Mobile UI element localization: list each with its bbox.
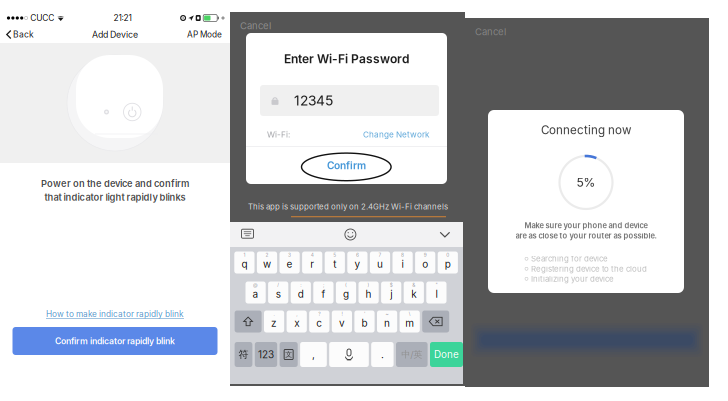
button[interactable]: Dictate — [329, 342, 369, 367]
staticText: that indicator light rapidly blinks — [44, 192, 185, 203]
staticText: a — [253, 288, 259, 300]
staticText: Confirm — [327, 159, 366, 172]
staticText: 6 — [356, 252, 359, 258]
button[interactable]: Done — [430, 342, 463, 367]
staticText: n — [384, 317, 390, 329]
staticText: q — [241, 258, 247, 270]
button[interactable]: 中/英 — [396, 342, 428, 367]
staticText: This app is supported only on 2.4GHz Wi-… — [248, 202, 448, 211]
button[interactable]: , — [287, 310, 307, 332]
staticText: 8 — [401, 252, 404, 258]
staticText: ; — [323, 282, 324, 288]
staticText: l — [435, 288, 437, 300]
button[interactable]: Cancel — [469, 23, 512, 40]
staticText: 5 — [333, 252, 336, 258]
staticText: Initializing your device — [531, 274, 614, 283]
staticText: Change Network — [363, 130, 429, 139]
button[interactable]: ( — [336, 281, 356, 303]
staticText: @ — [253, 282, 258, 288]
button[interactable]: Change Network — [363, 128, 429, 141]
staticText: ) — [368, 282, 370, 288]
staticText: d — [298, 288, 304, 300]
staticText: Back — [13, 29, 34, 40]
button[interactable]: Input method — [280, 342, 298, 367]
button[interactable]: 6 — [347, 251, 367, 273]
button[interactable]: : — [291, 281, 311, 303]
button[interactable]: & — [404, 281, 424, 303]
staticText: 0 — [446, 252, 449, 258]
button[interactable]: Confirm — [246, 147, 447, 184]
button[interactable]: 3 — [279, 251, 300, 273]
button[interactable]: Hide keyboard — [434, 226, 455, 243]
staticText: Confirm indicator rapidly blink — [55, 336, 175, 346]
staticText: Wi-Fi: — [267, 130, 290, 139]
button[interactable]: 123 — [255, 342, 277, 367]
button[interactable]: ? — [309, 310, 329, 332]
staticText: / — [277, 282, 279, 288]
staticText: o — [422, 258, 428, 270]
button[interactable]: 8 — [392, 251, 413, 273]
button[interactable]: , — [300, 342, 327, 367]
button[interactable]: / — [268, 281, 288, 303]
staticText: p — [445, 258, 451, 270]
button[interactable]: How to make indicator rapidly blink — [38, 306, 192, 322]
staticText: j — [390, 288, 392, 300]
staticText: Cancel — [475, 26, 506, 37]
staticText: Make sure your phone and device — [524, 221, 647, 230]
button[interactable]: 1 — [234, 251, 254, 273]
button[interactable]: \ — [400, 310, 420, 332]
button[interactable]: 0 — [438, 251, 458, 273]
staticText: e — [287, 258, 293, 270]
staticText: r — [310, 258, 314, 270]
staticText: CUCC — [30, 13, 54, 23]
button[interactable]: ~ — [377, 310, 397, 332]
button[interactable]: Shift — [235, 310, 262, 332]
button[interactable]: 7 — [370, 251, 390, 273]
button[interactable]: AP Mode — [187, 25, 230, 43]
staticText: . — [381, 348, 384, 361]
staticText: s — [276, 288, 281, 300]
button[interactable]: 4 — [302, 251, 322, 273]
button[interactable]: Keyboard — [236, 224, 258, 243]
staticText: Add Device — [92, 29, 138, 40]
button[interactable]: ) — [358, 281, 379, 303]
staticText: 21:21 — [113, 13, 131, 23]
staticText: Enter Wi-Fi Password — [284, 52, 409, 66]
staticText: g — [343, 288, 349, 300]
button[interactable]: Back — [0, 25, 34, 44]
button[interactable]: ! — [332, 310, 352, 332]
staticText: 4 — [311, 252, 314, 258]
button[interactable]: 符 — [235, 342, 252, 367]
staticText: b — [361, 317, 367, 329]
button[interactable]: Emoji — [340, 224, 361, 245]
button[interactable]: Cancel — [234, 17, 277, 34]
button[interactable]: @ — [245, 281, 266, 303]
button[interactable]: 2 — [257, 251, 277, 273]
staticText: 2 — [265, 252, 268, 258]
staticText: are as close to your router as possible. — [515, 231, 656, 240]
staticText: 1 — [243, 252, 245, 258]
staticText: " — [435, 282, 437, 288]
button[interactable]: ' — [354, 310, 375, 332]
staticText: 中/英 — [401, 349, 422, 360]
button[interactable]: . — [264, 310, 284, 332]
staticText: , — [296, 311, 297, 317]
staticText: 文 — [285, 350, 292, 359]
button[interactable]: 9 — [415, 251, 435, 273]
button[interactable]: Confirm indicator rapidly blink — [12, 327, 217, 355]
staticText: t — [333, 258, 336, 270]
button[interactable]: ; — [313, 281, 333, 303]
staticText: \ — [409, 311, 411, 317]
button[interactable]: 5 — [325, 251, 345, 273]
button[interactable]: $ — [381, 281, 401, 303]
staticText: ( — [345, 282, 347, 288]
staticText: $ — [390, 282, 393, 288]
staticText: k — [411, 288, 416, 300]
button[interactable]: Delete — [422, 310, 449, 332]
staticText: u — [377, 258, 383, 270]
button[interactable]: " — [426, 281, 446, 303]
button[interactable]: . — [371, 342, 394, 367]
staticText: & — [412, 282, 415, 288]
staticText: 7 — [378, 252, 381, 258]
staticText: ~ — [386, 311, 389, 317]
